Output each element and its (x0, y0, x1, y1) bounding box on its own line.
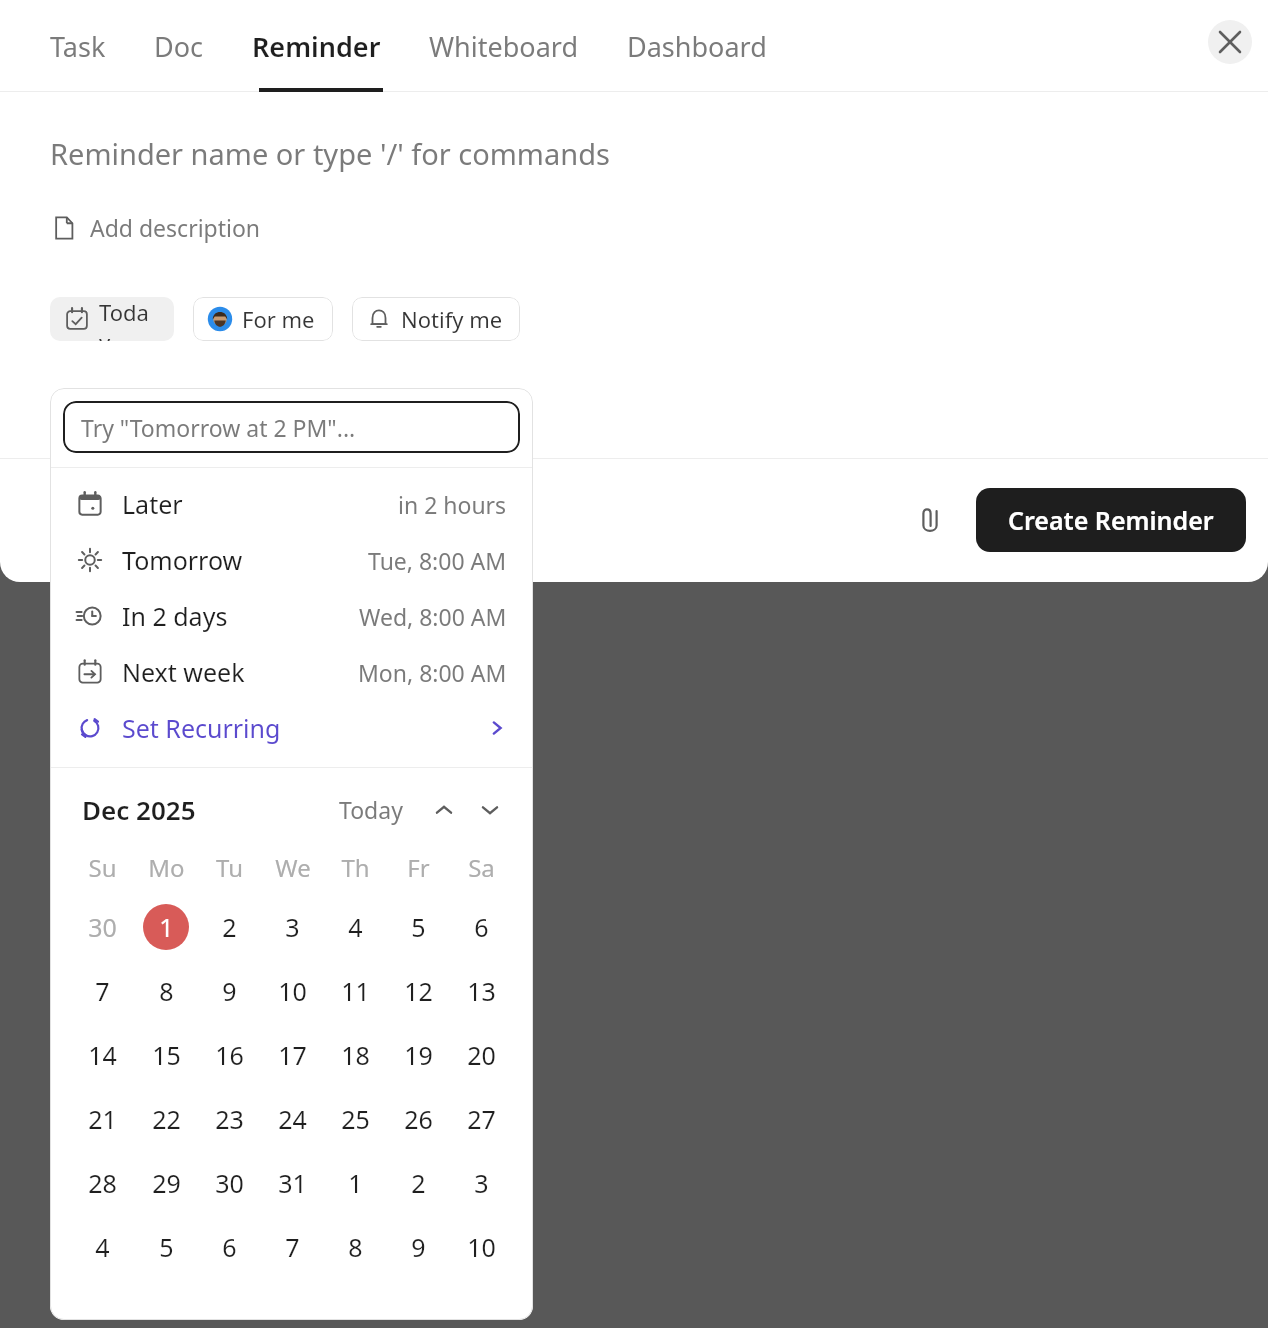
button[interactable]: Next month (473, 793, 507, 827)
button[interactable]: 19 (387, 1023, 450, 1087)
button[interactable]: 18 (324, 1023, 387, 1087)
button[interactable]: Add description (50, 212, 261, 243)
button[interactable]: 6 (450, 895, 513, 959)
staticText: 9 (411, 1230, 426, 1264)
button[interactable]: 5 (134, 1215, 198, 1279)
button[interactable]: 26 (387, 1087, 450, 1151)
button[interactable]: 11 (324, 959, 387, 1023)
button[interactable]: 7 (261, 1215, 324, 1279)
staticText: Add description (90, 212, 261, 243)
button[interactable]: 14 (70, 1023, 134, 1087)
button[interactable]: 8 (324, 1215, 387, 1279)
button[interactable]: 16 (198, 1023, 261, 1087)
staticText: 9 (222, 974, 237, 1008)
button[interactable]: Set Recurring (50, 700, 533, 756)
button[interactable]: 30 (198, 1151, 261, 1215)
staticText: Set Recurring (122, 711, 281, 745)
staticText: Today (339, 794, 403, 825)
button[interactable]: 2 (198, 895, 261, 959)
button[interactable]: Tomorrow (50, 532, 533, 588)
button[interactable]: 4 (70, 1215, 134, 1279)
staticText: 7 (285, 1230, 300, 1264)
staticText: 4 (348, 910, 363, 944)
staticText: Su (88, 851, 117, 884)
staticText: 18 (341, 1038, 370, 1072)
button[interactable]: 23 (198, 1087, 261, 1151)
button[interactable]: Later (50, 476, 533, 532)
staticText: 5 (411, 910, 426, 944)
button[interactable]: 24 (261, 1087, 324, 1151)
staticText: 19 (404, 1038, 433, 1072)
staticText: 21 (88, 1102, 117, 1136)
button[interactable]: 12 (387, 959, 450, 1023)
staticText: Try "Tomorrow at 2 PM"... (81, 412, 356, 443)
button[interactable]: 29 (134, 1151, 198, 1215)
button[interactable]: Close (1208, 20, 1252, 64)
staticText: 16 (215, 1038, 244, 1072)
button[interactable]: Dashboard (627, 0, 767, 92)
staticText: Dashboard (627, 28, 767, 65)
button[interactable]: 7 (70, 959, 134, 1023)
staticText: 30 (88, 910, 117, 944)
button[interactable]: For me (193, 297, 333, 341)
button[interactable]: Notify me (352, 297, 520, 341)
button[interactable]: 17 (261, 1023, 324, 1087)
staticText: 3 (474, 1166, 489, 1200)
button[interactable]: 10 (450, 1215, 513, 1279)
button[interactable]: 15 (134, 1023, 198, 1087)
staticText: 22 (152, 1102, 181, 1136)
button[interactable]: Reminder (252, 0, 381, 92)
staticText: 24 (278, 1102, 307, 1136)
button[interactable]: 10 (261, 959, 324, 1023)
button[interactable]: 9 (198, 959, 261, 1023)
button[interactable]: Try "Tomorrow at 2 PM"... (63, 401, 520, 453)
button[interactable]: 2 (387, 1151, 450, 1215)
button[interactable]: 22 (134, 1087, 198, 1151)
staticText: 3 (285, 910, 300, 944)
button[interactable]: 25 (324, 1087, 387, 1151)
staticText: Create Reminder (1008, 503, 1214, 537)
button[interactable]: 9 (387, 1215, 450, 1279)
button[interactable]: In 2 days (50, 588, 533, 644)
button[interactable]: 31 (261, 1151, 324, 1215)
button[interactable]: 1 (324, 1151, 387, 1215)
staticText: 8 (159, 974, 174, 1008)
button[interactable]: Reminder name or type '/' for commands (0, 134, 1268, 173)
staticText: Whiteboard (429, 28, 579, 65)
button[interactable]: Next week (50, 644, 533, 700)
staticText: Reminder (252, 28, 381, 65)
button[interactable]: 4 (324, 895, 387, 959)
button[interactable]: 20 (450, 1023, 513, 1087)
button[interactable]: Attach (904, 494, 956, 546)
staticText: 6 (222, 1230, 237, 1264)
staticText: 31 (278, 1166, 307, 1200)
button[interactable]: Task (50, 0, 106, 92)
button[interactable]: 3 (261, 895, 324, 959)
button[interactable]: Today (50, 297, 174, 341)
staticText: 5 (159, 1230, 174, 1264)
button[interactable]: 30 (70, 895, 134, 959)
button[interactable]: 5 (387, 895, 450, 959)
button[interactable]: Today (333, 790, 409, 829)
button[interactable]: 21 (70, 1087, 134, 1151)
button[interactable]: 28 (70, 1151, 134, 1215)
staticText: Next week (122, 655, 245, 689)
button[interactable]: 27 (450, 1087, 513, 1151)
staticText: 2 (222, 910, 237, 944)
staticText: Notify me (401, 304, 503, 334)
button[interactable]: 1 (134, 895, 198, 959)
staticText: Fr (407, 851, 430, 884)
staticText: Sa (468, 851, 495, 884)
staticText: In 2 days (122, 599, 228, 633)
button[interactable]: Doc (154, 0, 204, 92)
button[interactable]: Create Reminder (976, 488, 1246, 552)
button[interactable]: 3 (450, 1151, 513, 1215)
button[interactable]: 8 (134, 959, 198, 1023)
button[interactable]: Whiteboard (429, 0, 579, 92)
button[interactable]: 6 (198, 1215, 261, 1279)
staticText: 1 (159, 910, 174, 944)
button[interactable]: Previous month (427, 793, 461, 827)
staticText: 25 (341, 1102, 370, 1136)
button[interactable]: 13 (450, 959, 513, 1023)
staticText: Today (99, 297, 160, 341)
